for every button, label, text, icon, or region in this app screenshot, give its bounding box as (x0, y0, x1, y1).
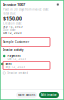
button[interactable]: Edit invoice (39, 92, 59, 98)
button[interactable]: Invoice created (3, 71, 61, 74)
button[interactable]: Sample Customer (1, 37, 50, 46)
staticText: Payment (7, 54, 20, 58)
staticText: Edit invoice (41, 93, 57, 97)
staticText: Oct 12, 2023 (7, 57, 26, 61)
staticText: Invoice created (7, 71, 28, 75)
staticText: Sep 12, 2023 (5, 65, 25, 69)
staticText: Sample Customer (3, 40, 29, 44)
staticText: Paid in 30 days from invoice date (3, 8, 49, 11)
staticText: Invoice activity (3, 48, 23, 52)
button[interactable]: Sent (1, 62, 50, 68)
button[interactable]: More actions (16, 92, 37, 98)
staticText: Due date (3, 28, 16, 32)
button[interactable]: Payment (3, 54, 61, 60)
staticText: $150.00 (3, 15, 22, 22)
button[interactable]: More options (56, 2, 60, 7)
staticText: Invoice 1007 (3, 2, 25, 7)
staticText: Sent (5, 62, 11, 66)
staticText: Creation date (3, 22, 22, 25)
staticText: More actions (18, 93, 35, 97)
staticText: Sep 12, 2023 (3, 25, 23, 28)
staticText: Oct 12, 2023 (3, 31, 22, 35)
staticText: Total due (3, 12, 16, 15)
